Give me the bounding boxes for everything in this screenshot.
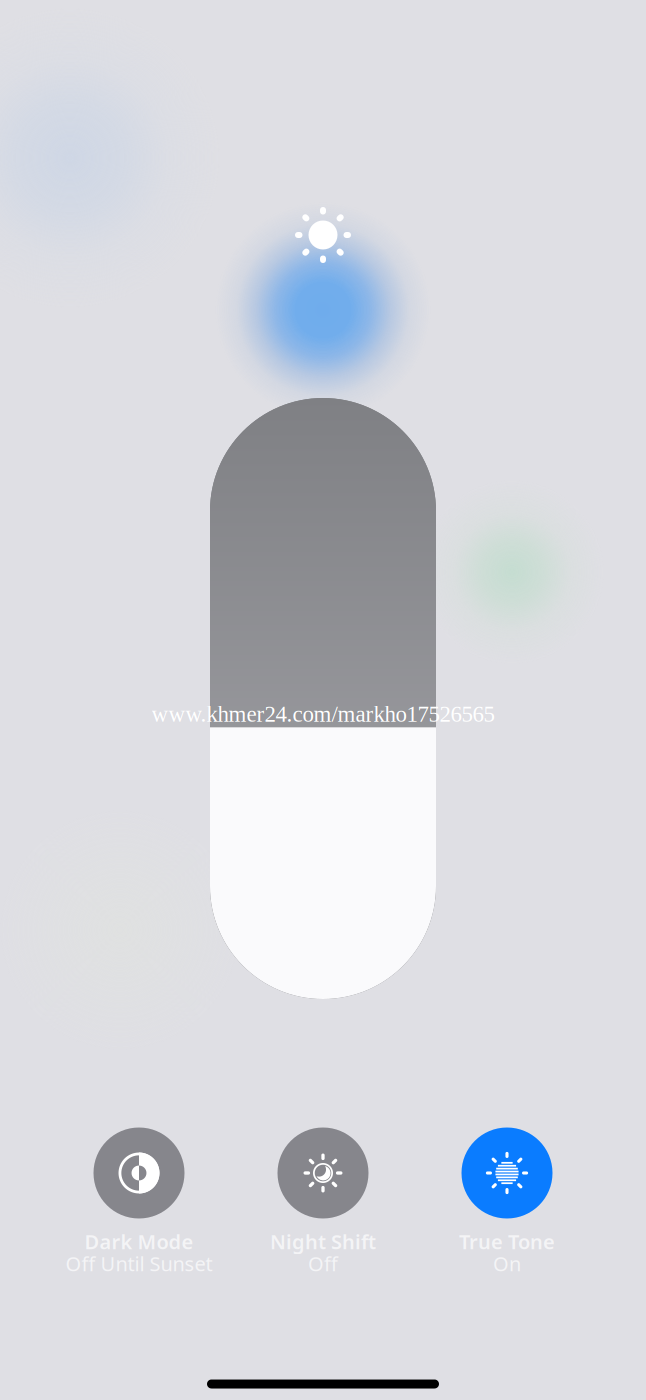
staticText: Off Until Sunset [65,1250,212,1277]
button[interactable]: Dark Mode [47,1127,231,1282]
staticText: True Tone [459,1228,555,1255]
button[interactable]: True Tone [415,1127,599,1282]
staticText: Off [308,1250,338,1277]
staticText: www.khmer24.com/markho17526565 [151,701,494,727]
staticText: On [493,1250,521,1277]
staticText: Night Shift [270,1228,376,1255]
staticText: Dark Mode [84,1228,193,1255]
button[interactable]: Night Shift [231,1127,415,1282]
